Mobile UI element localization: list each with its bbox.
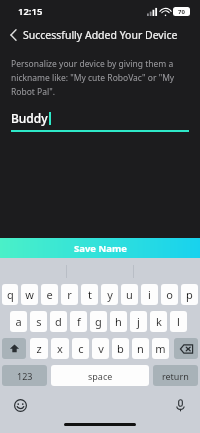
staticText: 123 bbox=[17, 370, 33, 382]
button[interactable]: z bbox=[30, 338, 48, 359]
button[interactable]: q bbox=[2, 284, 18, 305]
button[interactable]: u bbox=[121, 284, 138, 305]
staticText: m bbox=[155, 341, 166, 356]
button[interactable]: j bbox=[130, 311, 147, 332]
button[interactable]: Backspace bbox=[174, 338, 198, 359]
button[interactable]: x bbox=[51, 338, 69, 359]
button[interactable]: y bbox=[101, 284, 118, 305]
button[interactable]: h bbox=[110, 311, 127, 332]
staticText: n bbox=[137, 341, 144, 356]
button[interactable]: w bbox=[21, 284, 38, 305]
staticText: return bbox=[162, 370, 189, 382]
staticText: Personalize your device by giving them a… bbox=[11, 58, 189, 97]
button[interactable]: d bbox=[50, 311, 67, 332]
button[interactable]: n bbox=[132, 338, 149, 359]
button[interactable]: s bbox=[30, 311, 47, 332]
staticText: t bbox=[88, 287, 92, 302]
staticText: g bbox=[95, 314, 102, 329]
button[interactable]: return bbox=[153, 365, 198, 386]
staticText: c bbox=[78, 341, 84, 356]
button[interactable]: i bbox=[141, 284, 158, 305]
staticText: i bbox=[148, 287, 151, 302]
staticText: 70 bbox=[178, 8, 185, 16]
staticText: d bbox=[55, 314, 62, 329]
staticText: w bbox=[25, 287, 34, 302]
button[interactable]: Back bbox=[0, 22, 26, 48]
staticText: e bbox=[46, 287, 53, 302]
button[interactable]: Emoji bbox=[12, 397, 28, 413]
button[interactable]: e bbox=[41, 284, 58, 305]
staticText: k bbox=[156, 314, 162, 329]
staticText: x bbox=[57, 341, 63, 356]
staticText: 12:15 bbox=[18, 5, 43, 18]
staticText: q bbox=[7, 287, 14, 302]
button[interactable]: Shift bbox=[2, 338, 26, 359]
button[interactable]: v bbox=[92, 338, 109, 359]
button[interactable]: space bbox=[51, 365, 149, 386]
staticText: Successfully Added Your Device bbox=[23, 28, 178, 42]
staticText: p bbox=[186, 287, 193, 302]
staticText: o bbox=[166, 287, 173, 302]
button[interactable]: p bbox=[181, 284, 198, 305]
button[interactable]: 123 bbox=[2, 365, 47, 386]
staticText: a bbox=[15, 314, 22, 329]
staticText: s bbox=[36, 314, 42, 329]
staticText: y bbox=[107, 287, 113, 302]
staticText: l bbox=[177, 314, 180, 329]
staticText: j bbox=[137, 314, 140, 329]
staticText: v bbox=[98, 341, 104, 356]
button[interactable]: r bbox=[61, 284, 78, 305]
staticText: Save Name bbox=[74, 242, 127, 255]
button[interactable]: f bbox=[70, 311, 87, 332]
staticText: r bbox=[67, 287, 72, 302]
button[interactable]: o bbox=[161, 284, 178, 305]
button[interactable]: l bbox=[170, 311, 187, 332]
staticText: z bbox=[36, 341, 42, 356]
button[interactable]: a bbox=[10, 311, 27, 332]
staticText: Buddy bbox=[11, 110, 48, 126]
button[interactable]: Save Name bbox=[0, 238, 200, 258]
staticText: f bbox=[77, 314, 81, 329]
staticText: u bbox=[126, 287, 133, 302]
button[interactable]: m bbox=[152, 338, 169, 359]
button[interactable]: g bbox=[90, 311, 107, 332]
button[interactable]: c bbox=[72, 338, 89, 359]
button[interactable]: k bbox=[150, 311, 167, 332]
button[interactable]: b bbox=[112, 338, 129, 359]
staticText: space bbox=[88, 370, 113, 382]
button[interactable]: t bbox=[81, 284, 98, 305]
button[interactable]: Dictate bbox=[172, 397, 188, 413]
staticText: b bbox=[117, 341, 124, 356]
staticText: h bbox=[115, 314, 122, 329]
